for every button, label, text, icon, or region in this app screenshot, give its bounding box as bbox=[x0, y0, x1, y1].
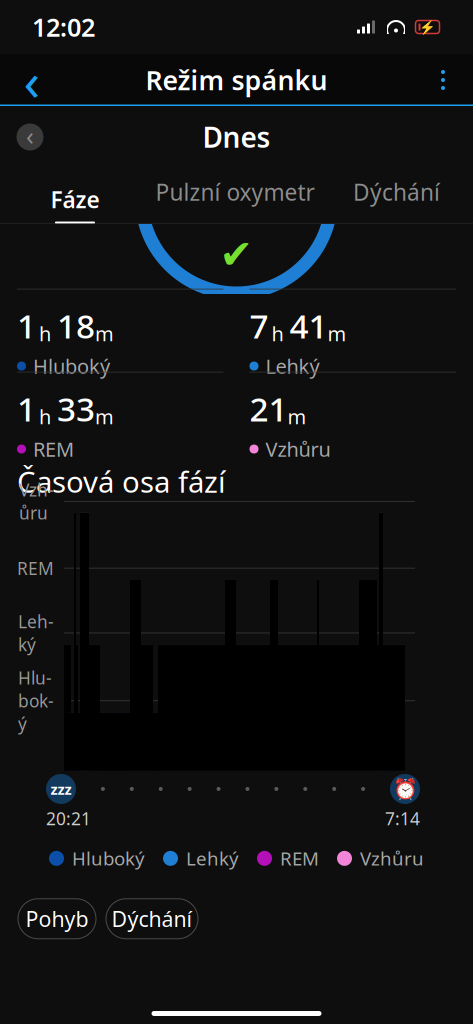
staticText: 41 bbox=[289, 303, 327, 348]
staticText: 20:21 bbox=[46, 807, 91, 830]
staticText: Vzhůru bbox=[265, 436, 330, 462]
button[interactable]: Dýchání bbox=[320, 168, 473, 224]
button[interactable]: Previous day bbox=[8, 115, 52, 159]
button[interactable]: Back bbox=[6, 56, 58, 104]
staticText: 18 bbox=[57, 303, 95, 348]
staticText: 1 bbox=[17, 386, 36, 431]
staticText: Lehký bbox=[265, 353, 319, 379]
staticText: m bbox=[95, 320, 114, 347]
staticText: Fáze bbox=[50, 184, 99, 214]
staticText: m bbox=[327, 320, 346, 347]
staticText: ⚡ bbox=[419, 19, 436, 35]
staticText: 1 bbox=[17, 303, 36, 348]
staticText: m bbox=[95, 403, 114, 430]
staticText: Hluboký bbox=[72, 846, 145, 871]
staticText: Pulzní oxymetr bbox=[155, 177, 314, 207]
staticText: Dýchání bbox=[353, 177, 440, 207]
staticText: Pohyb bbox=[25, 905, 88, 933]
staticText: 7:14 bbox=[385, 807, 420, 830]
staticText: Lehký bbox=[186, 846, 239, 871]
staticText: ‹ bbox=[26, 119, 34, 152]
staticText: Režim spánku bbox=[145, 62, 327, 98]
staticText: h bbox=[39, 320, 51, 347]
staticText: h bbox=[271, 320, 283, 347]
staticText: m bbox=[287, 403, 306, 430]
staticText: 33 bbox=[57, 386, 95, 431]
button[interactable]: Dýchání bbox=[106, 899, 198, 939]
staticText: Lehký bbox=[18, 610, 54, 656]
staticText: zᴢᴢ bbox=[50, 779, 71, 799]
staticText: REM bbox=[33, 436, 74, 462]
staticText: Časová osa fází bbox=[17, 462, 226, 501]
staticText: Hluboký bbox=[33, 353, 110, 379]
button[interactable]: Pulzní oxymetr bbox=[150, 168, 320, 224]
staticText: Dnes bbox=[202, 118, 270, 156]
staticText: ‹ bbox=[23, 45, 40, 115]
staticText: Dýchání bbox=[111, 905, 192, 933]
staticText: ✔ bbox=[219, 232, 253, 277]
button[interactable]: Fáze bbox=[0, 168, 150, 224]
button[interactable]: More options bbox=[419, 56, 467, 104]
staticText: h bbox=[39, 403, 51, 430]
staticText: ⏰ bbox=[392, 777, 417, 800]
staticText: Vzhůru bbox=[19, 478, 54, 524]
staticText: REM bbox=[280, 846, 319, 871]
button[interactable]: Pohyb bbox=[18, 899, 96, 939]
staticText: Vzhůru bbox=[360, 846, 424, 871]
staticText: 7 bbox=[249, 303, 268, 348]
staticText: 21 bbox=[249, 386, 287, 431]
staticText: REM bbox=[17, 557, 54, 580]
staticText: 12:02 bbox=[32, 10, 95, 44]
staticText: Hluboký bbox=[18, 666, 54, 735]
